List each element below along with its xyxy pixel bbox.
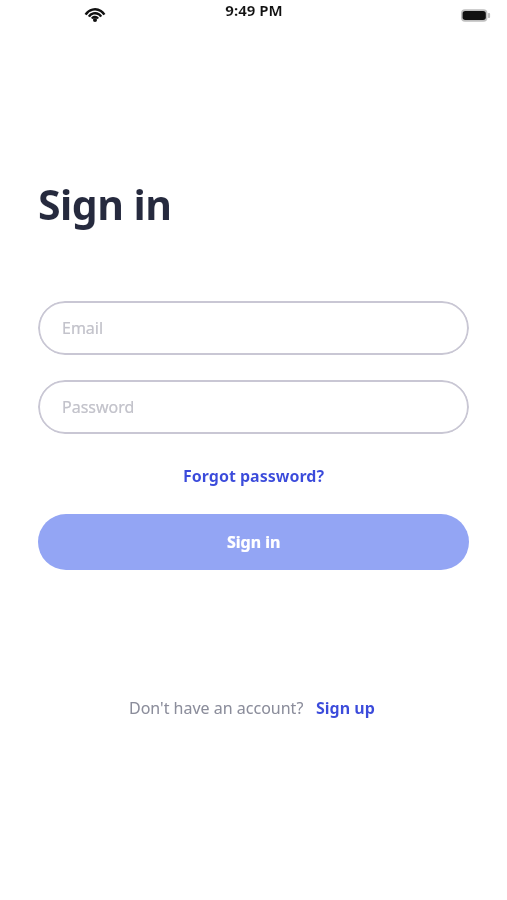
button[interactable]: Forgot password? <box>177 462 331 490</box>
staticText: 9:49 PM <box>225 0 283 20</box>
staticText: Don't have an account? <box>129 697 304 719</box>
staticText: Sign up <box>316 697 375 719</box>
staticText: Email <box>62 317 104 339</box>
staticText: Sign in <box>38 176 172 232</box>
button[interactable]: Sign in <box>38 514 469 570</box>
button[interactable]: Password <box>38 380 469 434</box>
staticText: Sign in <box>227 531 281 553</box>
staticText: Password <box>62 396 135 418</box>
button[interactable]: Email <box>38 301 469 355</box>
button[interactable]: Sign up <box>312 694 379 722</box>
staticText: Forgot password? <box>183 465 325 487</box>
